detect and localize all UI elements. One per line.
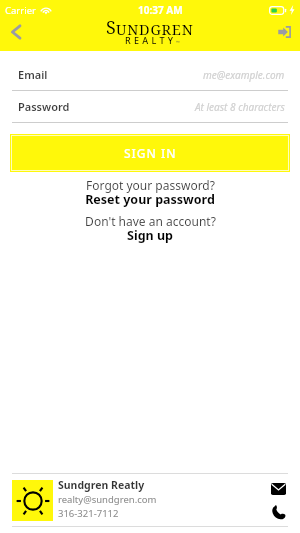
staticText: Password — [18, 99, 70, 114]
button[interactable]: Forgot your password? — [0, 177, 300, 210]
button[interactable]: SIGN IN — [12, 136, 288, 170]
staticText: REALTY — [125, 34, 177, 46]
staticText: Don't have an account? — [85, 213, 216, 229]
button[interactable]: Password — [0, 91, 300, 123]
staticText: Sundgren Reatly — [58, 478, 145, 492]
button[interactable]: Back — [0, 20, 33, 51]
staticText: At least 8 characters — [195, 100, 285, 114]
staticText: 316-321-7112 — [58, 507, 119, 520]
button[interactable]: Email — [0, 59, 300, 91]
staticText: Carrier — [5, 4, 36, 17]
staticText: UNDGREN — [116, 19, 194, 39]
staticText: Reset your password — [85, 191, 215, 208]
staticText: Forgot your password? — [86, 177, 215, 193]
button[interactable]: Sign in — [267, 20, 300, 51]
staticText: Email — [18, 67, 48, 82]
button[interactable]: Email — [267, 479, 289, 499]
staticText: Sign up — [127, 227, 173, 244]
staticText: S — [106, 15, 116, 40]
staticText: SIGN IN — [124, 145, 177, 161]
button[interactable]: Call — [267, 502, 289, 522]
staticText: me@example.com — [203, 68, 285, 82]
staticText: ™ — [176, 39, 180, 45]
button[interactable]: Don't have an account? — [0, 213, 300, 246]
staticText: realty@sundgren.com — [58, 493, 157, 506]
staticText: 10:37 AM — [138, 3, 183, 17]
